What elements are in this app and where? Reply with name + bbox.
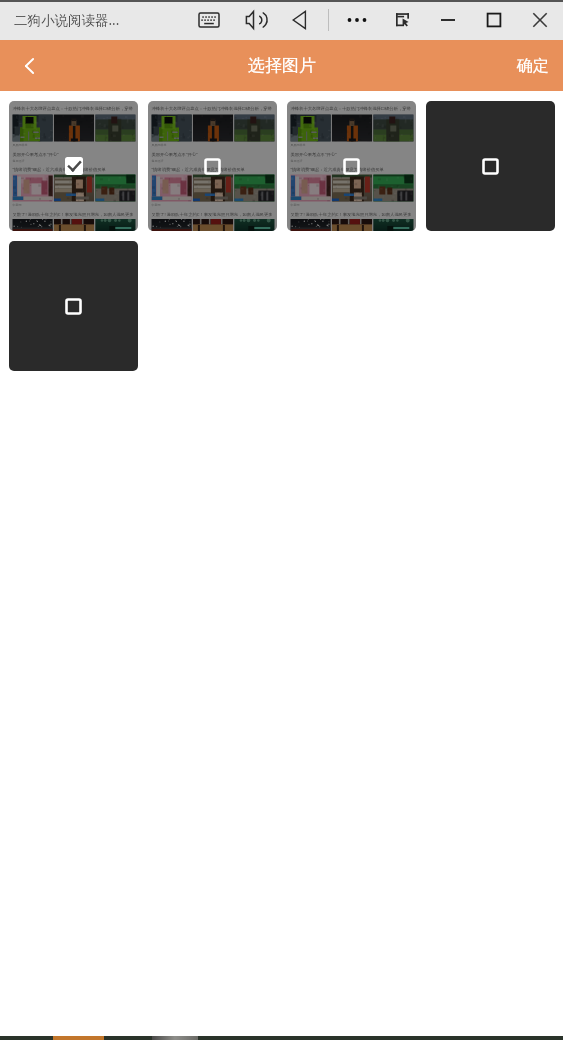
- staticText: 选择图片: [248, 55, 316, 76]
- button[interactable]: [287, 101, 416, 231]
- button[interactable]: [426, 101, 555, 231]
- button[interactable]: Screen capture: [392, 9, 414, 31]
- button[interactable]: Back: [290, 9, 312, 31]
- button[interactable]: [148, 101, 277, 231]
- staticText: 二狗小说阅读器...: [14, 11, 120, 29]
- staticText: 确定: [517, 56, 549, 76]
- button[interactable]: [9, 241, 138, 371]
- button[interactable]: Minimize: [437, 9, 459, 31]
- button[interactable]: Back: [0, 40, 56, 91]
- button[interactable]: [9, 101, 138, 231]
- button[interactable]: Maximize: [483, 9, 505, 31]
- button[interactable]: 确定: [503, 44, 563, 88]
- button[interactable]: Keyboard: [198, 9, 220, 31]
- button[interactable]: Volume: [244, 9, 266, 31]
- button[interactable]: Close: [529, 9, 551, 31]
- button[interactable]: More options: [345, 9, 367, 31]
